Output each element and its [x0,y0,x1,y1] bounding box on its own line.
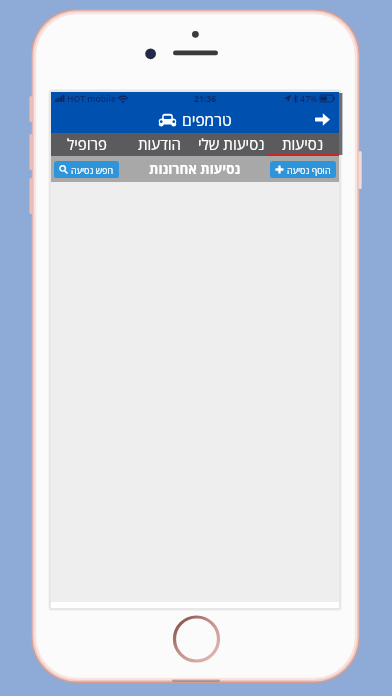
button[interactable]: נסיעות שלי [195,133,267,156]
button[interactable]: נסיעות [267,133,339,156]
staticText: נסיעות אחרונות [149,160,241,178]
staticText: הוסף נסיעה [287,164,331,176]
staticText: 47% [300,93,318,105]
staticText: טרמפים [182,109,232,130]
staticText: חפש נסיעה [71,164,114,176]
staticText: HOT mobile [67,93,116,105]
staticText: נסיעות [282,134,324,154]
button[interactable]: פרופיל [51,133,123,156]
button[interactable]: הוסף נסיעה [270,161,336,178]
staticText: נסיעות שלי [198,134,265,154]
button[interactable]: חפש נסיעה [54,161,119,178]
staticText: 21:36 [194,93,217,105]
button[interactable]: Next [311,108,333,130]
button[interactable]: הודעות [123,133,195,156]
staticText: הודעות [138,134,181,154]
staticText: פרופיל [67,134,107,154]
